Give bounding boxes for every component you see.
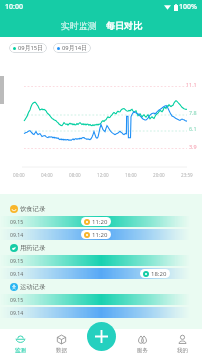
- staticText: 11:20: [92, 231, 108, 239]
- staticText: 6.1: [189, 125, 197, 132]
- button[interactable]: Add record: [87, 322, 116, 351]
- button[interactable]: 饮食记录: [0, 201, 202, 216]
- button[interactable]: 09月15日: [9, 43, 47, 53]
- staticText: 04:00: [41, 172, 53, 178]
- staticText: 我的: [177, 347, 188, 354]
- staticText: 监测: [15, 347, 26, 354]
- button[interactable]: 09.15: [0, 255, 202, 266]
- button[interactable]: 服务: [122, 329, 162, 359]
- staticText: 11.1: [186, 81, 197, 88]
- staticText: 用药记录: [20, 244, 46, 252]
- staticText: 实时监测: [61, 20, 97, 31]
- staticText: 23:59: [181, 172, 193, 178]
- staticText: 16:00: [125, 172, 137, 178]
- staticText: 09.14: [10, 270, 24, 277]
- staticText: 11:20: [92, 218, 108, 226]
- staticText: 100%: [179, 2, 197, 12]
- staticText: 20:00: [153, 172, 165, 178]
- staticText: 09月15日: [18, 44, 43, 52]
- staticText: 09月14日: [62, 44, 87, 52]
- button[interactable]: 实时监测: [58, 18, 100, 33]
- staticText: 12:00: [97, 172, 109, 178]
- staticText: 饮食记录: [20, 205, 46, 213]
- button[interactable]: 监测: [0, 329, 41, 359]
- staticText: 08:00: [69, 172, 81, 178]
- button[interactable]: 09月14日: [53, 43, 91, 53]
- button[interactable]: 每日对比: [103, 18, 145, 33]
- staticText: 3.9: [189, 143, 197, 150]
- button[interactable]: 运动记录: [0, 279, 202, 294]
- button[interactable]: 数据: [41, 329, 82, 359]
- staticText: 7.8: [189, 109, 197, 116]
- button[interactable]: 18:20: [140, 269, 170, 278]
- button[interactable]: 09.15: [0, 216, 202, 227]
- button[interactable]: 用药记录: [0, 240, 202, 255]
- staticText: 09.15: [10, 218, 24, 225]
- staticText: 09.14: [10, 309, 24, 316]
- button[interactable]: 09.14: [0, 307, 202, 318]
- button[interactable]: 11:20: [81, 230, 111, 239]
- button[interactable]: 09.15: [0, 294, 202, 305]
- staticText: 10:00: [5, 2, 23, 12]
- button[interactable]: 11:20: [81, 217, 111, 226]
- staticText: 服务: [137, 347, 148, 354]
- button[interactable]: 我的: [162, 329, 202, 359]
- staticText: 每日对比: [106, 20, 142, 31]
- staticText: 00:00: [13, 172, 25, 178]
- button[interactable]: 09.14: [0, 229, 202, 240]
- staticText: 运动记录: [20, 283, 46, 291]
- staticText: 18:20: [151, 270, 167, 278]
- staticText: 数据: [56, 347, 67, 354]
- staticText: 09.15: [10, 296, 24, 303]
- staticText: 09.15: [10, 257, 24, 264]
- button[interactable]: 09.14: [0, 268, 202, 279]
- staticText: 09.14: [10, 231, 24, 238]
